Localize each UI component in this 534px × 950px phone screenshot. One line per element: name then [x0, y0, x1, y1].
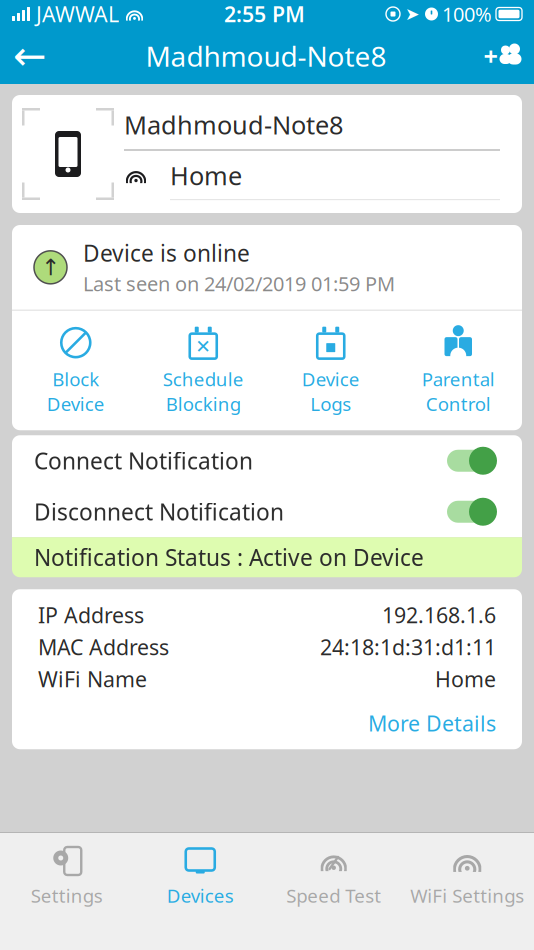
staticText: ↑ — [41, 254, 60, 280]
staticText: Last seen on 24/02/2019 01:59 PM — [83, 270, 395, 297]
button[interactable]: More Details — [342, 701, 522, 745]
staticText: WiFi Name — [38, 665, 147, 693]
staticText: Schedule — [163, 367, 244, 391]
staticText: Connect Notification — [34, 446, 253, 476]
button[interactable]: WiFi Settings — [400, 833, 534, 922]
staticText: 2:55 PM — [224, 0, 305, 28]
staticText: ← — [13, 33, 47, 79]
staticText: Logs — [310, 391, 351, 416]
staticText: ➤ — [405, 4, 420, 24]
staticText: ✕ — [195, 336, 211, 357]
staticText: Devices — [167, 883, 234, 908]
staticText: Device — [302, 367, 360, 391]
staticText: Block — [52, 367, 99, 391]
button[interactable]: Disconnect Notification — [12, 486, 522, 537]
staticText: Speed Test — [286, 883, 381, 908]
staticText: 24:18:1d:31:d1:11 — [320, 633, 496, 661]
staticText: More Details — [368, 709, 496, 737]
staticText: Home — [435, 665, 496, 693]
button[interactable]: Block — [12, 315, 139, 426]
staticText: Blocking — [166, 391, 241, 416]
staticText: Disconnect Notification — [34, 497, 284, 527]
staticText: Parental — [422, 367, 495, 391]
button[interactable]: Device — [267, 315, 394, 426]
staticText: + — [483, 39, 497, 73]
button[interactable]: Speed Test — [267, 833, 400, 922]
staticText: 100% — [442, 1, 492, 27]
staticText: IP Address — [38, 601, 144, 629]
staticText: Madhmoud-Note8 — [124, 108, 343, 141]
staticText: MAC Address — [38, 633, 169, 661]
staticText: Notification Status : Active on Device — [34, 542, 424, 572]
button[interactable]: Add device — [472, 28, 534, 84]
staticText: WiFi Settings — [410, 883, 524, 908]
button[interactable]: Settings — [0, 833, 133, 922]
staticText: Madhmoud-Note8 — [145, 37, 386, 75]
staticText: Settings — [31, 883, 103, 908]
button[interactable]: Connect Notification — [12, 435, 522, 486]
button[interactable]: Parental — [394, 315, 522, 426]
staticText: JAWWAL — [36, 0, 119, 28]
staticText: Home — [170, 158, 242, 192]
button[interactable]: ✕ — [139, 315, 267, 426]
button[interactable]: Back — [0, 28, 60, 84]
staticText: 192.168.1.6 — [382, 601, 496, 629]
button[interactable]: Devices — [133, 833, 267, 922]
staticText: Device is online — [83, 238, 250, 268]
staticText: Device — [47, 391, 105, 416]
staticText: Control — [426, 391, 491, 416]
